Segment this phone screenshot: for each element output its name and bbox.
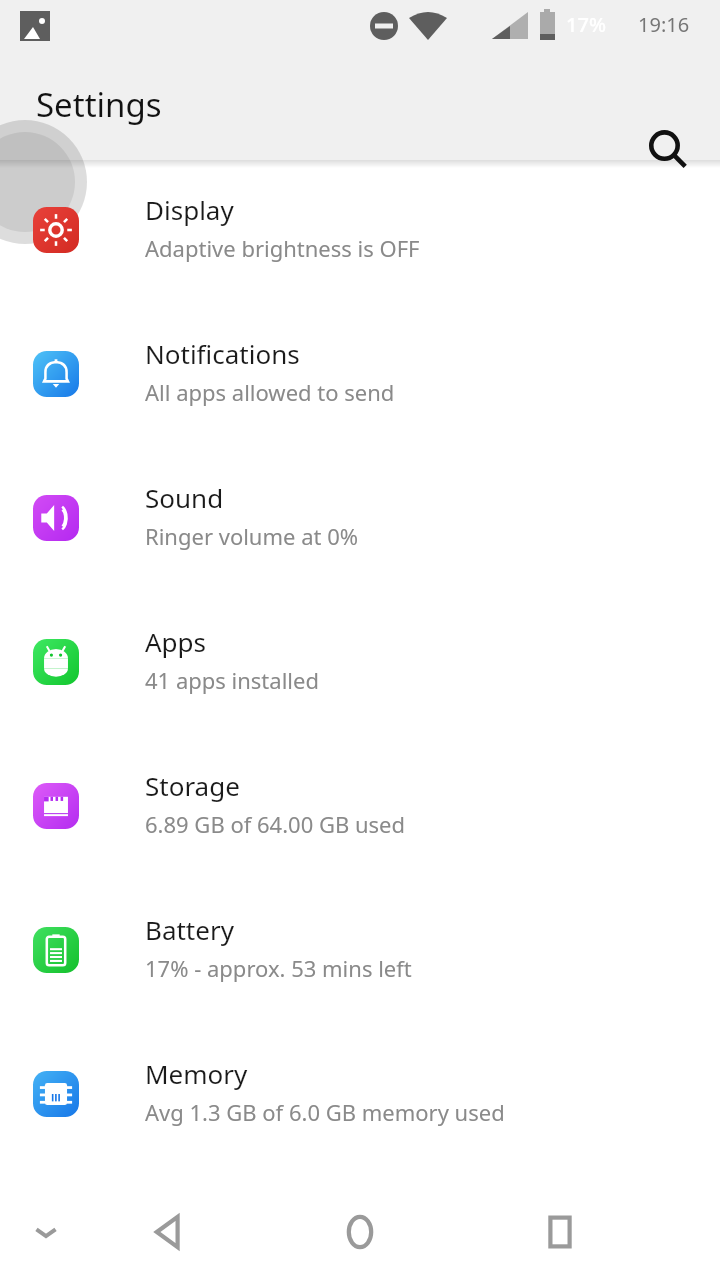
button[interactable]: Back [128, 1192, 208, 1272]
button[interactable]: Apps [0, 600, 720, 744]
staticText: Ringer volume at 0% [145, 521, 359, 551]
staticText: 41 apps installed [145, 665, 319, 695]
staticText: Notifications [145, 336, 300, 371]
staticText: Avg 1.3 GB of 6.0 GB memory used [145, 1097, 505, 1127]
staticText: Memory [145, 1056, 248, 1091]
staticText: Display [145, 192, 234, 227]
staticText: 17% [566, 11, 606, 38]
staticText: Battery [145, 912, 234, 947]
button[interactable]: Battery [0, 888, 720, 1032]
staticText: Storage [145, 768, 240, 803]
button[interactable]: Hide keyboard [10, 1196, 82, 1268]
staticText: Sound [145, 480, 224, 515]
staticText: All apps allowed to send [145, 377, 395, 407]
button[interactable]: Notifications [0, 312, 720, 456]
button[interactable]: Sound [0, 456, 720, 600]
button[interactable]: Search [632, 114, 704, 186]
button[interactable]: Home [320, 1192, 400, 1272]
staticText: 6.89 GB of 64.00 GB used [145, 809, 406, 839]
staticText: 19:16 [638, 11, 690, 38]
button[interactable]: Storage [0, 744, 720, 888]
staticText: Settings [36, 82, 162, 127]
button[interactable]: Memory [0, 1032, 720, 1176]
staticText: Apps [145, 624, 207, 659]
button[interactable]: Recents [520, 1192, 600, 1272]
staticText: 17% - approx. 53 mins left [145, 953, 412, 983]
button[interactable]: Display [0, 168, 720, 312]
staticText: Adaptive brightness is OFF [145, 233, 420, 263]
